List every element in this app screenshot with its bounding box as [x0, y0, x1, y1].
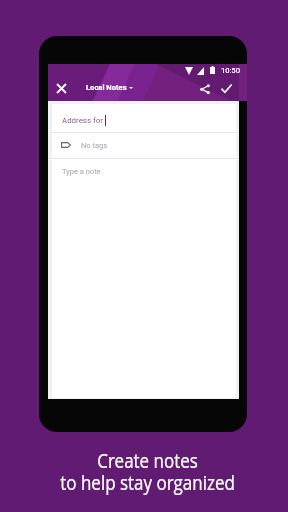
button[interactable]: Close [51, 78, 72, 99]
button[interactable]: Done [216, 78, 237, 99]
button[interactable]: Local Notes [84, 81, 135, 94]
staticText: Type a note [62, 167, 101, 176]
button[interactable]: Share [194, 78, 215, 99]
staticText: Create notes to help stay organized [25, 447, 270, 496]
staticText: No tags [81, 141, 108, 150]
staticText: 10:50 [221, 66, 240, 75]
button[interactable]: No tags [52, 133, 236, 159]
staticText: Local Notes [86, 83, 127, 92]
staticText: Address for [62, 116, 103, 125]
